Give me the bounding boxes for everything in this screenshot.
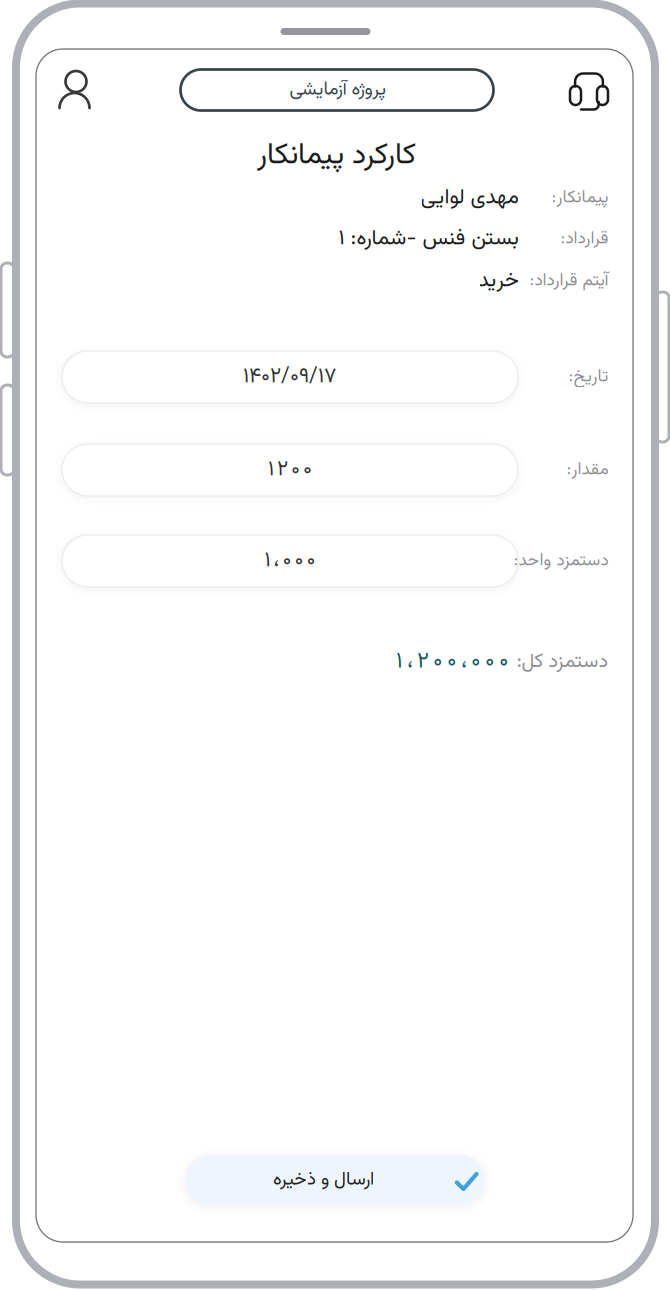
staticText: پیمانکار: <box>551 184 608 212</box>
button[interactable]: پشتیبانی <box>561 64 617 118</box>
button[interactable]: حساب کاربری <box>47 63 103 117</box>
staticText: مقدار: <box>566 456 608 484</box>
staticText: مهدی لوایی <box>420 181 518 215</box>
staticText: پروژه آزمایشی <box>289 75 385 105</box>
button[interactable]: پروژه آزمایشی <box>180 69 493 110</box>
staticText: قرارداد: <box>560 225 608 253</box>
staticText: دستمزد کل: <box>516 646 608 678</box>
staticText: خرید <box>478 264 518 298</box>
staticText: ۱۲۰۰ <box>268 453 312 487</box>
staticText: آیتم قرارداد: <box>529 267 608 295</box>
staticText: تاریخ: <box>568 363 608 391</box>
staticText: ۱،۰۰۰ <box>264 544 315 578</box>
button[interactable]: ارسال و ذخیره <box>185 1155 485 1205</box>
staticText: دستمزد واحد: <box>513 547 608 575</box>
staticText: کارکرد پیمانکار <box>256 133 415 179</box>
staticText: ۱۴۰۲/۰۹/۱۷ <box>243 360 337 394</box>
staticText: ارسال و ذخیره <box>272 1165 373 1195</box>
staticText: بستن فنس -شماره: ۱ <box>338 222 518 256</box>
staticText: ۱،۲۰۰،۰۰۰ <box>396 644 509 680</box>
